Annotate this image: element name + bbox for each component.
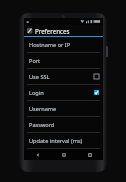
- button[interactable]: Recents: [77, 149, 103, 160]
- staticText: Port: [29, 57, 41, 65]
- button[interactable]: Password: [24, 117, 103, 133]
- button[interactable]: Home: [51, 149, 77, 160]
- other: Login checkbox checked: [94, 90, 99, 95]
- button[interactable]: Login: [24, 85, 103, 101]
- button[interactable]: Update interval (ms): [24, 133, 103, 149]
- staticText: Hostname or IP: [29, 41, 71, 49]
- staticText: Use SSL: [29, 73, 50, 81]
- button[interactable]: Username: [24, 101, 103, 117]
- staticText: Password: [29, 121, 55, 129]
- staticText: Preferences: [35, 27, 70, 35]
- other: Use SSL checkbox: [94, 74, 99, 79]
- button[interactable]: Hostname or IP: [24, 37, 103, 53]
- staticText: Username: [29, 105, 57, 113]
- button[interactable]: Port: [24, 53, 103, 69]
- button[interactable]: Back: [24, 149, 51, 160]
- button[interactable]: Use SSL: [24, 69, 103, 85]
- staticText: Login: [29, 89, 44, 97]
- staticText: Update interval (ms): [29, 137, 83, 145]
